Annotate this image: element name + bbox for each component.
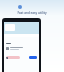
staticText: Fast and easy utility — [0, 11, 64, 15]
button[interactable] — [29, 56, 37, 59]
button[interactable] — [5, 24, 15, 31]
button[interactable]: App logo — [18, 5, 22, 9]
button[interactable] — [6, 56, 20, 59]
button[interactable] — [6, 47, 37, 50]
